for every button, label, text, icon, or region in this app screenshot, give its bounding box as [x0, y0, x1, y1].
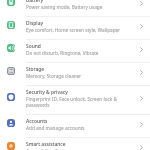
staticText: Accounts [26, 118, 48, 125]
button[interactable]: Security & privacy [0, 86, 150, 115]
staticText: Smart assistance [26, 141, 66, 148]
button[interactable]: Storage [0, 63, 150, 86]
staticText: Eye comfort, Home screen style, Wallpape… [26, 27, 121, 33]
staticText: Fingerprint ID, Face unlock, Screen lock… [26, 96, 136, 108]
staticText: Battery [26, 0, 44, 4]
button[interactable]: Sound [0, 40, 150, 63]
button[interactable]: Display [0, 17, 150, 40]
staticText: Sound [26, 43, 41, 50]
staticText: Security & privacy [26, 89, 68, 96]
staticText: Memory, Storage cleaner [26, 73, 82, 79]
staticText: Power saving mode, Battery usage [26, 4, 103, 10]
staticText: Display [26, 20, 44, 27]
button[interactable]: Accounts [0, 115, 150, 138]
staticText: Accessibility, Gestures [26, 148, 75, 150]
staticText: Storage [26, 66, 45, 73]
staticText: Do not disturb, Ringtone, Vibrate [26, 50, 99, 56]
button[interactable]: Battery [0, 0, 150, 17]
button[interactable]: Smart assistance [0, 138, 150, 150]
staticText: Add and manage accounts [26, 125, 85, 131]
